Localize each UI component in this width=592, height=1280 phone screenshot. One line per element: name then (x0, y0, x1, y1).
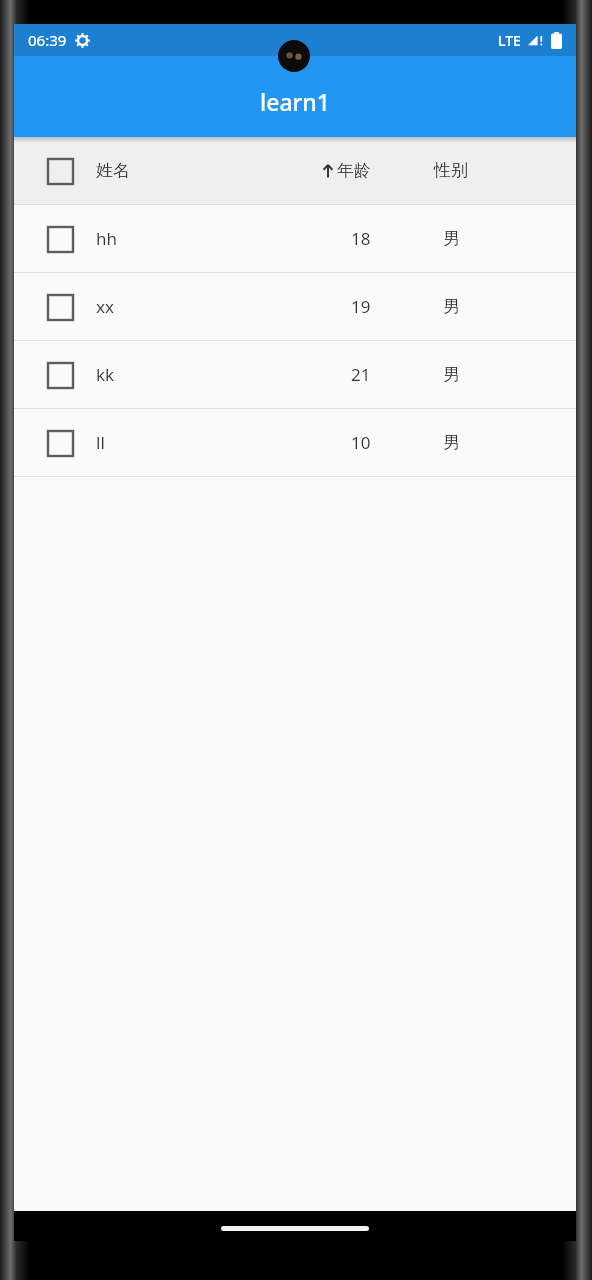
staticText: LTE (498, 31, 521, 50)
staticText: 男 (443, 228, 460, 249)
button[interactable]: Select row (42, 289, 78, 325)
staticText: hh (96, 227, 118, 250)
button[interactable]: Select row (14, 341, 576, 408)
button[interactable]: Select row (14, 137, 576, 204)
staticText: 19 (351, 295, 371, 318)
staticText: learn1 (260, 86, 330, 117)
button[interactable]: Select row (42, 425, 78, 461)
button[interactable]: Select row (42, 221, 78, 257)
button[interactable]: Select row (14, 409, 576, 476)
staticText: xx (96, 295, 114, 318)
staticText: 男 (443, 296, 460, 317)
staticText: 10 (351, 431, 371, 454)
staticText: 21 (351, 363, 371, 386)
staticText: ll (96, 431, 105, 454)
button[interactable]: Select row (42, 357, 78, 393)
staticText: kk (96, 363, 115, 386)
staticText: 男 (443, 432, 460, 453)
staticText: 姓名 (96, 160, 130, 181)
staticText: 06:39 (28, 30, 67, 50)
staticText: 性别 (434, 160, 468, 181)
staticText: 男 (443, 364, 460, 385)
button[interactable]: Select row (14, 273, 576, 340)
button[interactable]: Select row (14, 205, 576, 272)
staticText: 年龄 (337, 160, 371, 181)
staticText: 18 (351, 227, 371, 250)
button[interactable]: Select row (42, 153, 78, 189)
